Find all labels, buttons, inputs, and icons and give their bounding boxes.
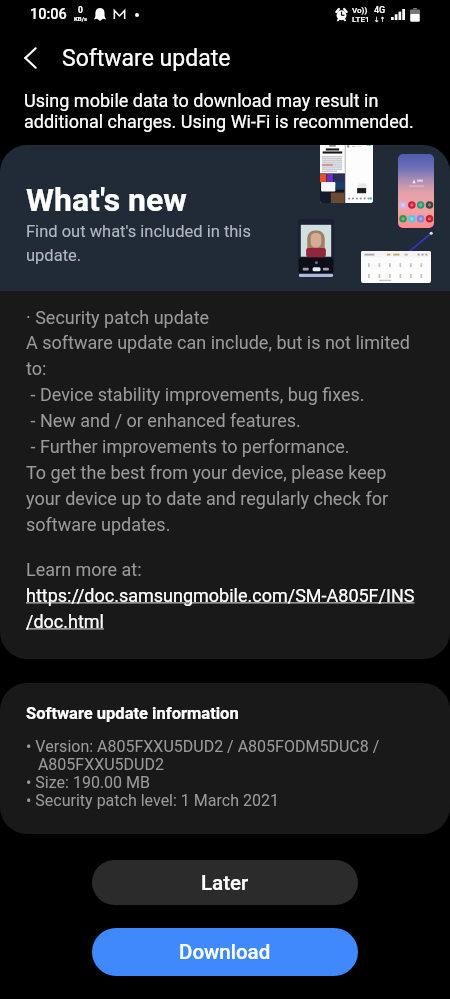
staticText: 0: [78, 5, 83, 15]
button[interactable]: Back: [11, 39, 49, 77]
button[interactable]: Later: [92, 860, 358, 905]
staticText: 4G: [374, 5, 386, 16]
staticText: Find out what's included in this update.: [26, 222, 251, 265]
staticText: Later: [201, 871, 249, 895]
staticText: KB/s: [74, 15, 87, 22]
button[interactable]: Download: [92, 928, 358, 976]
staticText: · Security patch update A software updat…: [26, 307, 410, 536]
button[interactable]: What's new: [0, 145, 450, 291]
staticText: Download: [179, 940, 271, 964]
staticText: • Version: A805FXXU5DUD2 / A805FODM5DUC8…: [26, 737, 380, 810]
staticText: Software update: [62, 45, 231, 72]
button[interactable]: https://doc.samsungmobile.com/SM-A805F/I…: [26, 585, 415, 632]
staticText: Learn more at:: [26, 559, 142, 580]
staticText: Vo)): [352, 6, 368, 15]
staticText: LTE1: [352, 15, 370, 24]
staticText: 10:06: [30, 6, 67, 23]
staticText: ↓↑: [374, 16, 386, 24]
staticText: Using mobile data to download may result…: [24, 90, 414, 132]
staticText: Software update information: [26, 704, 239, 723]
staticText: What's new: [26, 181, 187, 219]
